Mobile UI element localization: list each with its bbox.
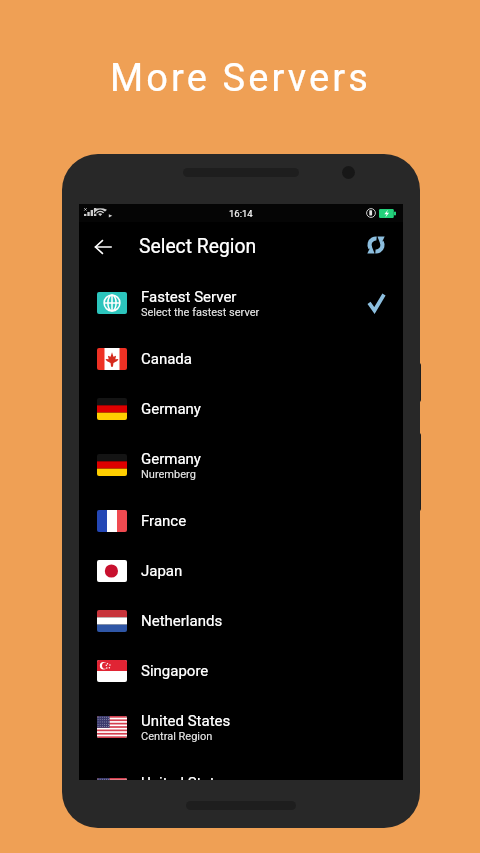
- staticText: Fastest Server: [141, 288, 237, 306]
- button[interactable]: Germany: [79, 384, 403, 434]
- button[interactable]: Refresh: [358, 229, 394, 265]
- button[interactable]: Singapore: [79, 646, 403, 696]
- staticText: United States: [141, 712, 231, 730]
- staticText: Singapore: [141, 662, 209, 680]
- button[interactable]: Germany: [79, 434, 403, 496]
- staticText: Select Region: [139, 235, 257, 258]
- button[interactable]: United States: [79, 696, 403, 758]
- button[interactable]: France: [79, 496, 403, 546]
- button[interactable]: Japan: [79, 546, 403, 596]
- staticText: Central Region: [141, 730, 213, 743]
- button[interactable]: United States: [79, 758, 403, 780]
- staticText: 16:14: [229, 208, 253, 219]
- staticText: United States: [141, 774, 231, 780]
- staticText: Canada: [141, 350, 192, 368]
- staticText: Germany: [141, 400, 201, 418]
- staticText: Select the fastest server: [141, 306, 260, 319]
- staticText: Germany: [141, 450, 201, 468]
- staticText: More Servers: [110, 56, 371, 101]
- button[interactable]: Back: [88, 229, 118, 265]
- button[interactable]: Canada: [79, 334, 403, 384]
- staticText: France: [141, 512, 187, 530]
- staticText: Japan: [141, 562, 183, 580]
- staticText: Nuremberg: [141, 468, 196, 481]
- button[interactable]: Netherlands: [79, 596, 403, 646]
- staticText: Netherlands: [141, 612, 223, 630]
- button[interactable]: Fastest Server: [79, 272, 403, 334]
